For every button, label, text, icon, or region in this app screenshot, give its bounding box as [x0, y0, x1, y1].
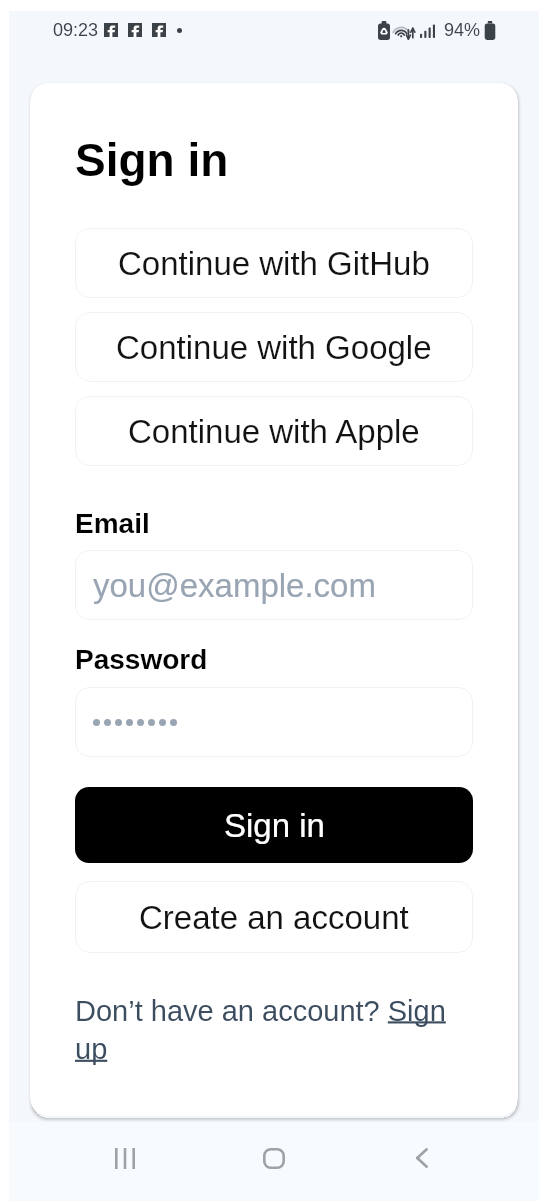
staticText: Continue with GitHub — [118, 245, 430, 282]
button[interactable] — [75, 687, 473, 757]
button[interactable]: Recents — [87, 1127, 162, 1189]
button[interactable]: Continue with Google — [75, 312, 473, 382]
staticText: 94% — [444, 20, 481, 40]
button[interactable]: Home — [236, 1127, 311, 1189]
button[interactable]: Create an account — [75, 881, 473, 953]
button[interactable]: Continue with Apple — [75, 396, 473, 466]
staticText: you@example.com — [93, 567, 376, 604]
staticText: Email — [75, 508, 150, 539]
button[interactable]: Back — [384, 1127, 459, 1189]
staticText: Continue with Apple — [128, 413, 420, 450]
button[interactable]: you@example.com — [75, 550, 473, 620]
staticText: Password — [75, 644, 208, 675]
staticText: Create an account — [139, 899, 409, 936]
staticText: Sign in — [75, 134, 229, 185]
button[interactable]: Continue with GitHub — [75, 228, 473, 298]
button[interactable]: Don’t have an account? Sign up — [75, 995, 473, 1066]
staticText: 09:23 — [53, 20, 99, 40]
button[interactable]: Sign in — [75, 787, 473, 863]
staticText: Sign in — [224, 807, 325, 844]
staticText: Continue with Google — [116, 329, 432, 366]
